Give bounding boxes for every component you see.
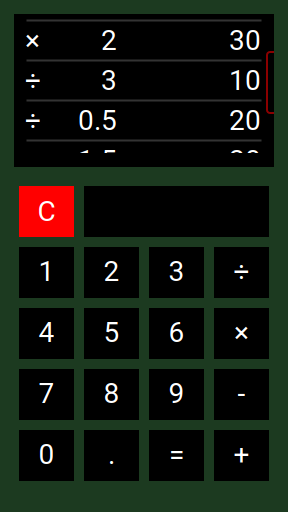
button[interactable]: - xyxy=(214,369,269,420)
staticText: 20 xyxy=(229,144,261,177)
staticText: = xyxy=(169,438,184,471)
staticText: × xyxy=(25,24,40,57)
staticText: 2 xyxy=(103,255,119,288)
staticText: 10 xyxy=(229,64,261,97)
staticText: 3 xyxy=(101,64,117,97)
button[interactable]: 8 xyxy=(84,369,139,420)
staticText: 20 xyxy=(229,104,261,137)
button[interactable]: 2 xyxy=(84,247,139,298)
button[interactable]: × xyxy=(214,308,269,359)
staticText: 30 xyxy=(229,24,261,57)
button[interactable]: 7 xyxy=(19,369,74,420)
button[interactable]: C xyxy=(19,186,74,237)
button[interactable]: 4 xyxy=(19,308,74,359)
staticText: 2 xyxy=(101,24,117,57)
button[interactable]: = xyxy=(149,430,204,481)
button[interactable]: 3 xyxy=(149,247,204,298)
staticText: − xyxy=(25,144,41,177)
button[interactable]: 5 xyxy=(84,308,139,359)
staticText: ÷ xyxy=(25,104,41,137)
staticText: 9 xyxy=(168,377,184,410)
button[interactable]: 1 xyxy=(19,247,74,298)
staticText: ÷ xyxy=(25,64,41,97)
staticText: 6 xyxy=(168,316,184,349)
staticText: 7 xyxy=(38,377,54,410)
button[interactable]: ÷ xyxy=(214,247,269,298)
button[interactable]: . xyxy=(84,430,139,481)
button[interactable]: 6 xyxy=(149,308,204,359)
staticText: 1 xyxy=(38,255,54,288)
button[interactable]: 0 xyxy=(19,430,74,481)
staticText: - xyxy=(237,377,245,410)
staticText: + xyxy=(233,438,249,471)
staticText: 1.5 xyxy=(78,144,117,177)
staticText: . xyxy=(108,438,115,471)
staticText: ÷ xyxy=(233,255,249,288)
staticText: × xyxy=(234,316,249,349)
staticText: 3 xyxy=(168,255,184,288)
staticText: 0.5 xyxy=(78,104,117,137)
staticText: 5 xyxy=(103,316,119,349)
staticText: 8 xyxy=(103,377,119,410)
button[interactable]: 9 xyxy=(149,369,204,420)
staticText: 0 xyxy=(38,438,54,471)
button[interactable]: + xyxy=(214,430,269,481)
staticText: 4 xyxy=(38,316,54,349)
staticText: C xyxy=(37,195,55,228)
